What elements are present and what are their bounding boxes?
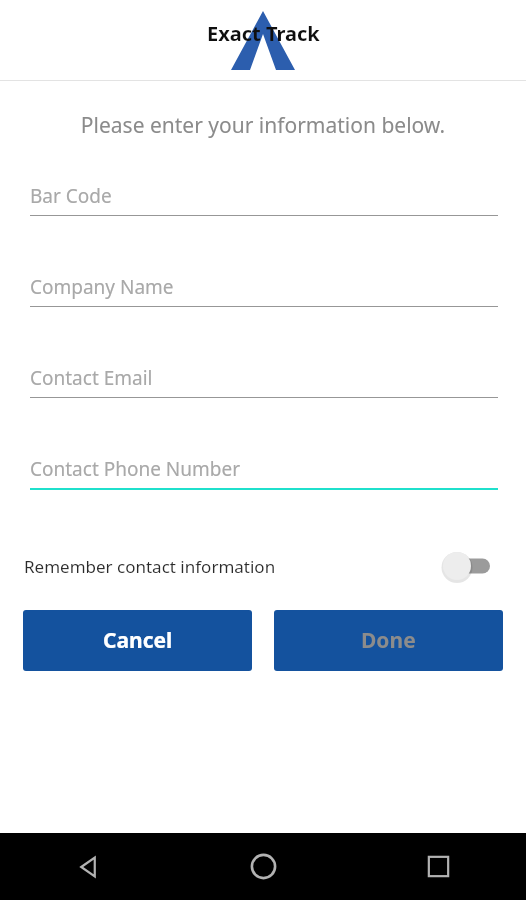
- staticText: Contact Email: [30, 365, 153, 391]
- staticText: Remember contact information: [24, 555, 438, 578]
- button[interactable]: Contact Phone Number: [0, 456, 526, 490]
- button[interactable]: Cancel: [23, 610, 252, 671]
- staticText: Contact Phone Number: [30, 456, 241, 482]
- button[interactable]: Back: [0, 833, 176, 900]
- staticText: Bar Code: [30, 183, 112, 209]
- button[interactable]: Contact Email: [0, 365, 526, 398]
- button[interactable]: Remember contact information: [438, 548, 502, 584]
- staticText: Done: [361, 626, 416, 655]
- staticText: Please enter your information below.: [0, 111, 526, 140]
- staticText: Cancel: [103, 626, 173, 655]
- button[interactable]: Done: [274, 610, 503, 671]
- button[interactable]: Recent apps: [351, 833, 526, 900]
- staticText: Company Name: [30, 274, 174, 300]
- staticText: Exact Track: [207, 20, 320, 47]
- button[interactable]: Company Name: [0, 274, 526, 307]
- button[interactable]: Home: [176, 833, 351, 900]
- button[interactable]: Bar Code: [0, 183, 526, 216]
